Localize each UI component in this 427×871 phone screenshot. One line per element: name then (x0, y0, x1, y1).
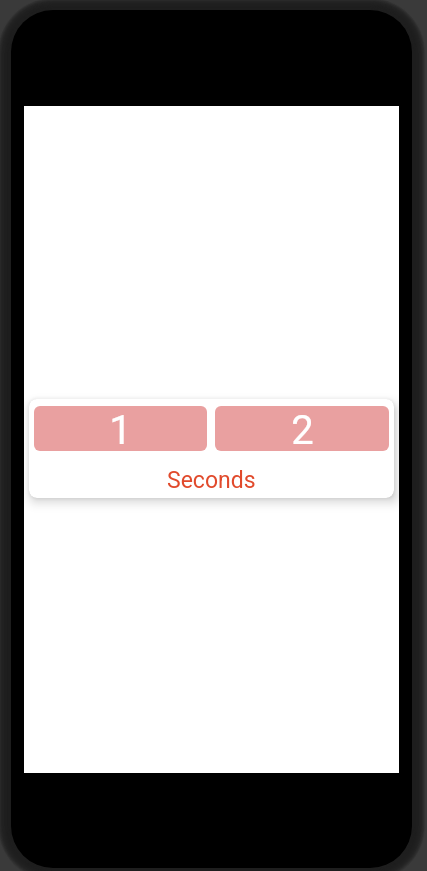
button[interactable]: 1 seconds (34, 406, 207, 451)
staticText: 2 (291, 407, 314, 451)
staticText: Seconds (167, 467, 256, 494)
staticText: 1 (109, 407, 132, 451)
button[interactable]: 2 seconds (215, 406, 389, 451)
